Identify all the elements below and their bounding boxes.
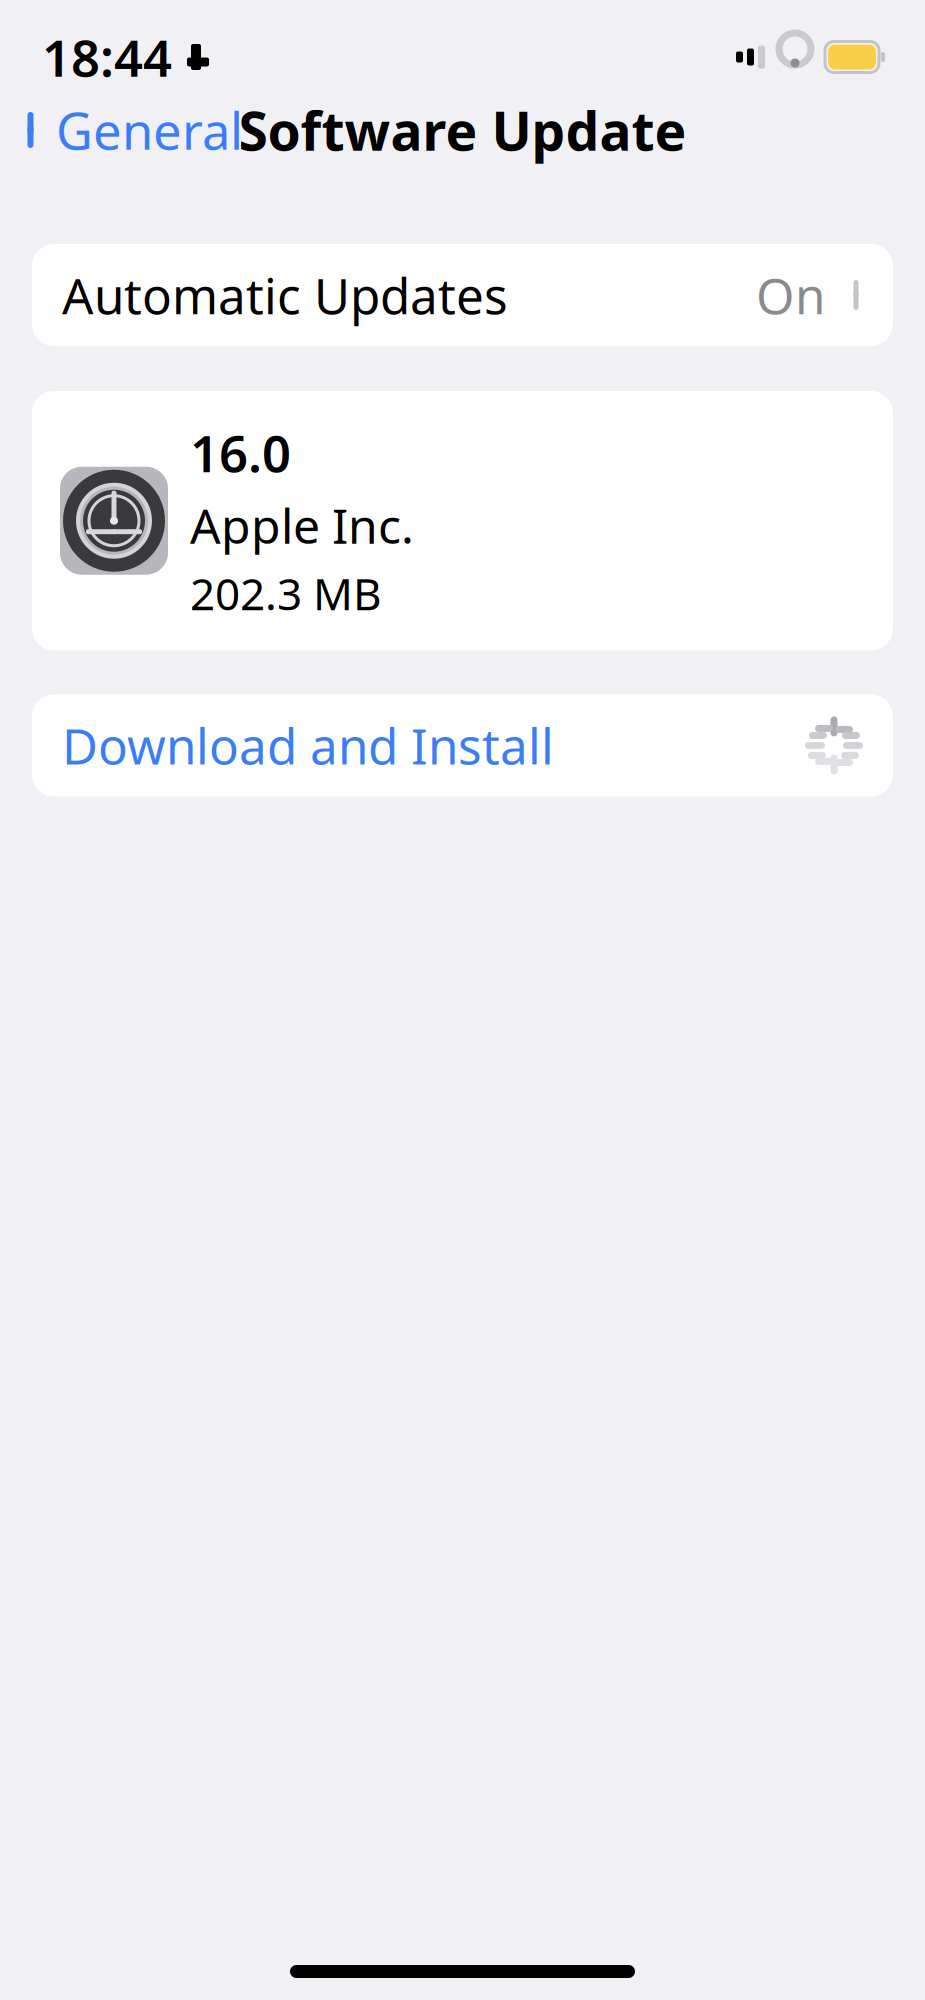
staticText: Apple Inc. <box>190 493 414 557</box>
staticText: Download and Install <box>62 713 554 778</box>
staticText: Automatic Updates <box>62 262 508 328</box>
staticText: 202.3 MB <box>190 564 382 622</box>
button[interactable]: Download and Install <box>32 694 893 796</box>
staticText: General <box>56 96 243 164</box>
staticText: 18:44 <box>42 23 172 91</box>
button[interactable]: Automatic Updates <box>32 244 893 346</box>
button[interactable]: General <box>0 88 243 172</box>
staticText: On <box>756 262 825 328</box>
staticText: Software Update <box>238 95 686 165</box>
staticText: 16.0 <box>190 419 291 486</box>
